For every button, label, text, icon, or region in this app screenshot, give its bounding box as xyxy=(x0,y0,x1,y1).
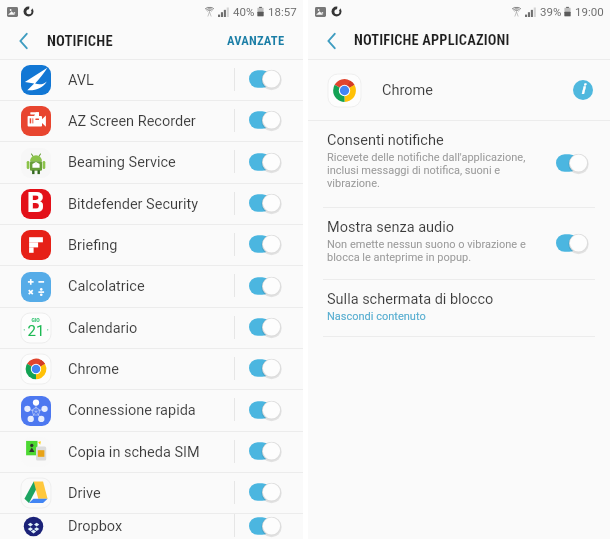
button[interactable]: Bitdefender Security xyxy=(0,184,303,224)
staticText: AVANZATE xyxy=(227,33,285,48)
staticText: Nascondi contenuto xyxy=(327,310,426,323)
staticText: Mostra senza audio xyxy=(327,219,454,236)
staticText: Beaming Service xyxy=(68,154,176,171)
staticText: Chrome xyxy=(382,82,433,99)
staticText: 19:00 xyxy=(575,5,604,18)
staticText: Sulla schermata di blocco xyxy=(327,291,494,308)
staticText: 18:57 xyxy=(268,5,297,18)
staticText: NOTIFICHE xyxy=(47,32,113,49)
button[interactable]: Back xyxy=(10,28,36,54)
staticText: NOTIFICHE APPLICAZIONI xyxy=(354,32,510,49)
staticText: Drive xyxy=(68,485,101,502)
staticText: Briefing xyxy=(68,237,118,254)
staticText: vibrazione. xyxy=(327,177,380,190)
staticText: Bitdefender Security xyxy=(68,196,199,213)
button[interactable]: Connessione rapida xyxy=(0,390,303,431)
staticText: Calendario xyxy=(68,320,138,337)
button[interactable]: Calcolatrice xyxy=(0,266,303,307)
button[interactable]: AZ Screen Recorder xyxy=(0,101,303,141)
staticText: Calcolatrice xyxy=(68,278,145,295)
button[interactable]: Sulla schermata di blocco xyxy=(308,280,610,336)
staticText: Ricevete delle notifiche dall'applicazio… xyxy=(327,151,526,164)
button[interactable]: Back xyxy=(318,28,344,54)
button[interactable]: Consenti notifiche xyxy=(308,121,610,207)
button[interactable]: AVL xyxy=(0,60,303,100)
staticText: Consenti notifiche xyxy=(327,132,444,149)
button[interactable]: Briefing xyxy=(0,225,303,265)
button[interactable]: Copia in scheda SIM xyxy=(0,432,303,472)
button[interactable]: Beaming Service xyxy=(0,142,303,183)
button[interactable]: Chrome xyxy=(308,60,610,120)
staticText: Dropbox xyxy=(68,518,123,535)
button[interactable]: Info xyxy=(573,80,593,100)
staticText: Copia in scheda SIM xyxy=(68,444,200,461)
staticText: Connessione rapida xyxy=(68,402,196,419)
button[interactable]: Mostra senza audio xyxy=(308,208,610,279)
staticText: 39% xyxy=(540,5,562,18)
button[interactable]: Chrome xyxy=(0,349,303,389)
button[interactable]: AVANZATE xyxy=(209,25,303,56)
button[interactable]: Dropbox xyxy=(0,514,303,539)
staticText: blocca le anteprime in popup. xyxy=(327,251,472,264)
staticText: AZ Screen Recorder xyxy=(68,113,196,130)
staticText: Non emette nessun suono o vibrazione e xyxy=(327,238,526,251)
staticText: 40% xyxy=(233,5,255,18)
staticText: Chrome xyxy=(68,361,119,378)
button[interactable]: Drive xyxy=(0,473,303,513)
button[interactable]: Calendario xyxy=(0,308,303,348)
staticText: AVL xyxy=(68,72,94,89)
staticText: inclusi messaggi di notifica, suoni e xyxy=(327,164,501,177)
